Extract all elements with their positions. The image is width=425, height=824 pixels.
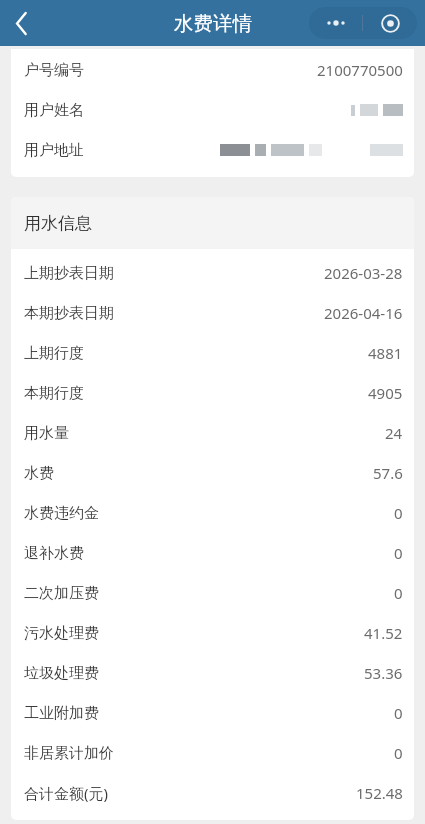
button[interactable]: 本期抄表日期 — [11, 293, 414, 333]
staticText: 本期行度 — [24, 384, 84, 403]
staticText: 用户姓名 — [24, 101, 84, 120]
staticText: 2026-03-28 — [324, 263, 403, 283]
staticText: 用水量 — [24, 424, 69, 443]
button[interactable]: 用水量 — [11, 413, 414, 453]
staticText: 非居累计加价 — [24, 744, 114, 763]
button[interactable]: 工业附加费 — [11, 693, 414, 733]
button[interactable]: 非居累计加价 — [11, 733, 414, 773]
button[interactable]: 二次加压费 — [11, 573, 414, 613]
button[interactable]: 污水处理费 — [11, 613, 414, 653]
button[interactable]: 水费违约金 — [11, 493, 414, 533]
staticText: 53.36 — [364, 663, 403, 683]
staticText: 退补水费 — [24, 544, 84, 563]
button[interactable]: 户号编号 — [11, 50, 414, 90]
staticText: 0 — [394, 743, 403, 763]
staticText: 用户地址 — [24, 141, 84, 160]
staticText: 0 — [394, 503, 403, 523]
button[interactable]: 垃圾处理费 — [11, 653, 414, 693]
staticText: 2026-04-16 — [324, 303, 403, 323]
button[interactable]: 用户姓名 — [11, 90, 414, 130]
staticText: 污水处理费 — [24, 624, 99, 643]
button[interactable]: More — [309, 7, 362, 39]
staticText: 垃圾处理费 — [24, 664, 99, 683]
button[interactable]: 用户地址 — [11, 130, 414, 170]
staticText: 合计金额(元) — [24, 783, 109, 803]
button[interactable]: 合计金额(元) — [11, 773, 414, 813]
staticText: 0 — [394, 583, 403, 603]
staticText: 户号编号 — [24, 61, 84, 80]
staticText: 本期抄表日期 — [24, 304, 114, 323]
button[interactable]: Close mini program — [363, 7, 417, 39]
staticText: 水费 — [24, 464, 54, 483]
staticText: 4905 — [368, 383, 403, 403]
staticText: 152.48 — [356, 783, 403, 803]
staticText: 24 — [385, 423, 403, 443]
staticText: 工业附加费 — [24, 704, 99, 723]
staticText: 上期行度 — [24, 344, 84, 363]
button[interactable]: Back — [0, 2, 42, 44]
staticText: 41.52 — [364, 623, 403, 643]
staticText: 0 — [394, 543, 403, 563]
staticText: 上期抄表日期 — [24, 264, 114, 283]
staticText: 2100770500 — [317, 60, 403, 80]
staticText: 水费违约金 — [24, 504, 99, 523]
staticText: 二次加压费 — [24, 584, 99, 603]
button[interactable]: 本期行度 — [11, 373, 414, 413]
staticText: 用水信息 — [24, 213, 92, 234]
button[interactable]: 上期行度 — [11, 333, 414, 373]
button[interactable]: 上期抄表日期 — [11, 253, 414, 293]
button[interactable]: 退补水费 — [11, 533, 414, 573]
button[interactable]: 水费 — [11, 453, 414, 493]
staticText: 57.6 — [373, 463, 403, 483]
staticText: 水费详情 — [174, 11, 252, 36]
staticText: 4881 — [368, 343, 403, 363]
staticText: 0 — [394, 703, 403, 723]
